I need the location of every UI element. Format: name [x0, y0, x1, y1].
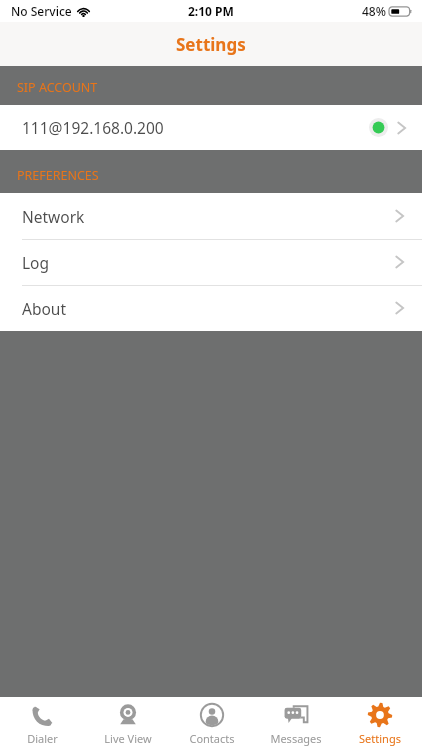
button[interactable]: 111@192.168.0.200: [0, 105, 422, 150]
button[interactable]: Contacts: [170, 697, 254, 750]
staticText: 111@192.168.0.200: [22, 117, 164, 138]
staticText: Network: [22, 206, 85, 227]
staticText: Settings: [176, 33, 246, 56]
button[interactable]: Messages: [254, 697, 338, 750]
button[interactable]: Settings: [338, 697, 422, 750]
button[interactable]: About: [0, 285, 422, 331]
button[interactable]: Log: [0, 239, 422, 285]
staticText: Settings: [359, 731, 401, 746]
staticText: PREFERENCES: [17, 167, 99, 184]
staticText: 48%: [362, 3, 386, 19]
staticText: About: [22, 298, 66, 319]
staticText: 2:10 PM: [188, 3, 234, 19]
button[interactable]: Network: [0, 193, 422, 239]
button[interactable]: Dialer: [0, 697, 85, 750]
staticText: Contacts: [189, 731, 235, 746]
staticText: Dialer: [27, 731, 58, 746]
staticText: Live View: [104, 731, 152, 746]
staticText: No Service: [11, 3, 72, 19]
staticText: SIP ACCOUNT: [17, 79, 98, 96]
button[interactable]: Live View: [85, 697, 170, 750]
staticText: Log: [22, 252, 50, 273]
staticText: Messages: [270, 731, 322, 746]
